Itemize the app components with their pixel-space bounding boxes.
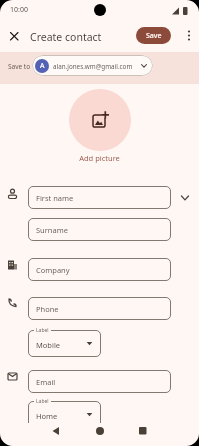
staticText: Save xyxy=(146,31,162,41)
button[interactable]: Mobile xyxy=(28,330,101,357)
button[interactable]: Company xyxy=(28,258,171,281)
button[interactable]: First name xyxy=(28,186,171,209)
staticText: Mobile xyxy=(36,340,61,350)
staticText: Company xyxy=(36,265,70,275)
button[interactable] xyxy=(51,426,61,436)
button[interactable] xyxy=(69,89,131,151)
staticText: 10:00 xyxy=(10,5,28,15)
staticText: Email xyxy=(36,377,56,387)
staticText: alan.jones.wm@gmail.com xyxy=(53,62,133,71)
button[interactable] xyxy=(138,426,148,436)
staticText: Save to xyxy=(8,62,31,71)
staticText: Label xyxy=(36,398,49,405)
button[interactable] xyxy=(183,28,195,44)
button[interactable] xyxy=(6,28,22,44)
staticText: Add picture xyxy=(0,153,199,163)
staticText: First name xyxy=(36,193,74,203)
staticText: Label xyxy=(36,327,49,334)
button[interactable]: Phone xyxy=(28,297,171,320)
button[interactable]: Save xyxy=(136,27,171,44)
staticText: Phone xyxy=(36,304,59,314)
staticText: Surname xyxy=(36,225,68,235)
button[interactable]: Email xyxy=(28,370,171,393)
button[interactable]: Home xyxy=(28,401,101,428)
button[interactable]: A xyxy=(32,55,153,76)
button[interactable] xyxy=(95,426,105,436)
staticText: Create contact xyxy=(30,30,102,44)
button[interactable]: Surname xyxy=(28,218,171,241)
staticText: A xyxy=(40,61,45,71)
staticText: Home xyxy=(36,411,58,421)
